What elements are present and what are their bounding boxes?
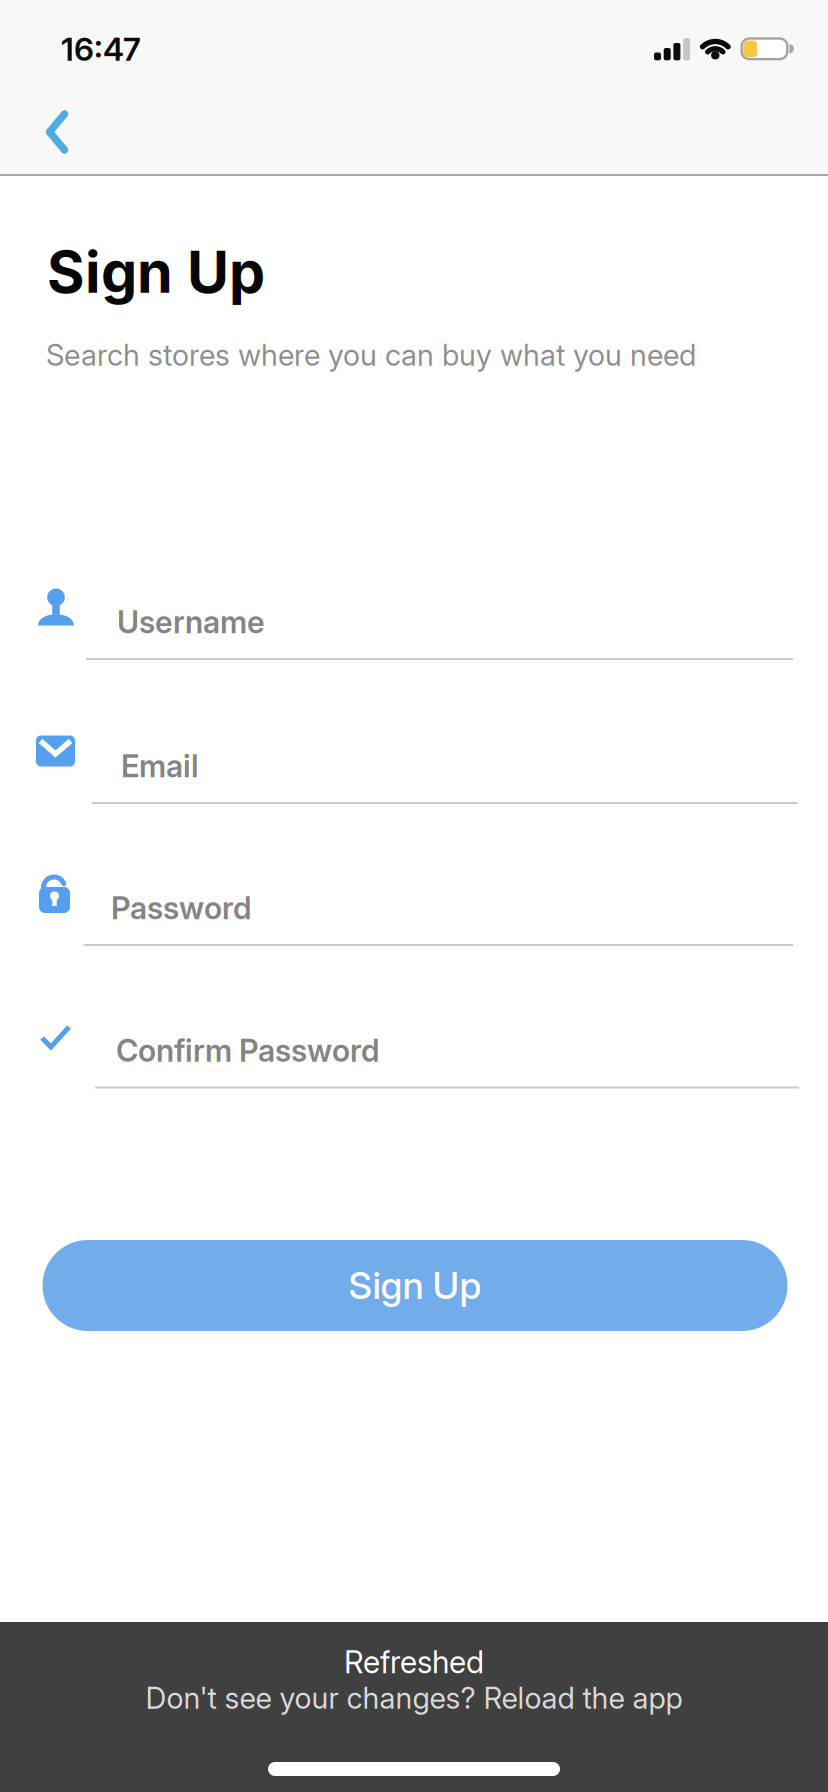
staticText: 16:47 (61, 30, 141, 68)
staticText: Username (117, 604, 265, 640)
button[interactable]: Back (31, 96, 82, 168)
staticText: Don't see your changes? Reload the app (145, 1681, 682, 1715)
staticText: Sign Up (47, 238, 265, 306)
staticText: Email (121, 748, 199, 784)
button[interactable]: Email (30, 700, 810, 812)
button[interactable]: Password (30, 842, 810, 954)
button[interactable]: Username (30, 556, 810, 668)
button[interactable]: Confirm Password (30, 984, 810, 1096)
staticText: Sign Up (348, 1263, 481, 1307)
staticText: Search stores where you can buy what you… (46, 338, 696, 372)
staticText: Refreshed (344, 1644, 484, 1680)
button[interactable]: Sign Up (42, 1240, 787, 1331)
staticText: Password (111, 890, 252, 926)
staticText: Confirm Password (116, 1032, 380, 1069)
